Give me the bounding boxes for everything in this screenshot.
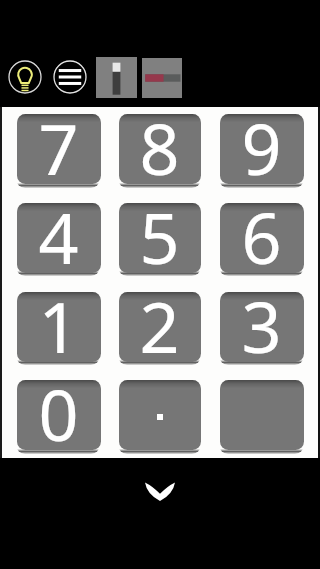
button[interactable] (119, 203, 201, 273)
button[interactable]: Brightness (96, 57, 137, 98)
button[interactable] (220, 114, 304, 184)
button[interactable] (220, 292, 304, 362)
button[interactable]: Hide keypad (138, 474, 182, 508)
button[interactable] (119, 114, 201, 184)
button[interactable] (119, 380, 201, 450)
button[interactable] (17, 292, 101, 362)
button[interactable] (17, 203, 101, 273)
button[interactable]: Flashlight (8, 60, 42, 94)
button[interactable]: Volume (142, 58, 182, 98)
button[interactable] (220, 203, 304, 273)
button[interactable]: Menu (53, 60, 87, 94)
button[interactable] (220, 380, 304, 450)
button[interactable] (17, 380, 101, 450)
button[interactable] (119, 292, 201, 362)
button[interactable] (17, 114, 101, 184)
